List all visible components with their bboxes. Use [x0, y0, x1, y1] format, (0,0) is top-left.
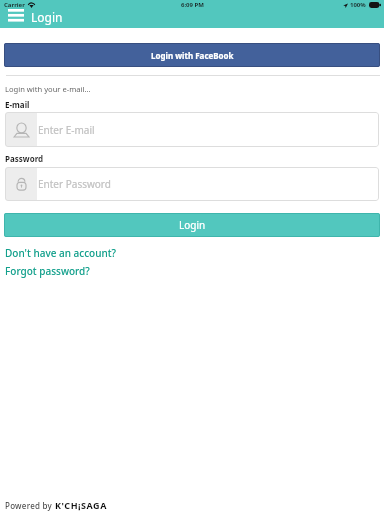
- staticText: 6:09 PM: [181, 1, 204, 9]
- staticText: Enter E-mail: [38, 123, 95, 137]
- button[interactable]: Don't have an account?: [5, 246, 117, 260]
- staticText: Don't have an account?: [5, 246, 117, 260]
- button[interactable]: Enter E-mail: [5, 112, 379, 147]
- staticText: Forgot password?: [5, 264, 90, 278]
- staticText: E-mail: [5, 99, 30, 110]
- staticText: K'CH¡SAGA: [55, 499, 107, 511]
- staticText: Login with your e-mail...: [5, 84, 91, 94]
- staticText: Login: [179, 218, 206, 232]
- button[interactable]: Login: [4, 213, 380, 237]
- staticText: Carrier: [4, 1, 25, 9]
- button[interactable]: Login with FaceBook: [4, 43, 380, 67]
- button[interactable]: Enter Password: [5, 167, 379, 201]
- staticText: Login: [31, 9, 63, 25]
- staticText: Powered by: [5, 500, 55, 511]
- staticText: Password: [5, 153, 44, 164]
- button[interactable]: Forgot password?: [5, 264, 90, 278]
- staticText: Enter Password: [38, 177, 111, 191]
- staticText: Login with FaceBook: [151, 50, 234, 61]
- staticText: 100%: [350, 1, 366, 9]
- button[interactable]: Open navigation menu: [8, 9, 24, 23]
